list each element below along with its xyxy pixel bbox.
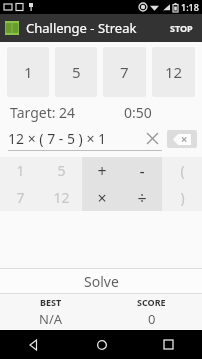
button[interactable]: ÷ (122, 184, 162, 211)
button[interactable]: 5 (41, 157, 82, 184)
button[interactable]: ) (162, 184, 202, 211)
button[interactable]: STOP (166, 18, 197, 38)
staticText: 0:50 (124, 103, 152, 122)
button[interactable]: Backspace (167, 130, 197, 148)
button[interactable]: ( (162, 157, 202, 184)
button[interactable]: Back (0, 330, 68, 359)
staticText: ÷ (137, 187, 147, 209)
button[interactable]: × (82, 184, 122, 211)
staticText: Solve (84, 272, 119, 291)
staticText: ( (180, 161, 185, 180)
staticText: 1:18 (181, 1, 199, 13)
staticText: N/A (39, 310, 63, 328)
button[interactable]: Recent apps (135, 330, 202, 359)
staticText: 7 (16, 188, 25, 207)
staticText: SCORE (137, 296, 166, 308)
staticText: 12 (165, 62, 183, 82)
button[interactable]: 7 (103, 47, 146, 97)
staticText: 12 × ( 7 - 5 ) × 1 (8, 129, 107, 148)
button[interactable]: Solve (0, 269, 202, 293)
button[interactable]: 1 (0, 157, 41, 184)
staticText: ) (180, 188, 185, 207)
staticText: 5 (57, 161, 66, 180)
staticText: 5 (72, 62, 81, 82)
staticText: 1 (24, 62, 33, 82)
button[interactable]: 7 (0, 184, 41, 211)
button[interactable]: 5 (55, 47, 97, 97)
button[interactable]: 12 (152, 47, 195, 97)
staticText: + (97, 160, 107, 182)
staticText: 1 (16, 161, 25, 180)
button[interactable]: 1 (7, 47, 49, 97)
staticText: 12 (53, 188, 70, 207)
staticText: × (97, 187, 107, 209)
button[interactable]: + (82, 157, 122, 184)
staticText: 7 (120, 62, 129, 82)
button[interactable]: 12 (41, 184, 82, 211)
button[interactable]: - (122, 157, 162, 184)
staticText: Target: 24 (10, 103, 76, 122)
button[interactable]: Clear expression (142, 128, 162, 148)
staticText: BEST (40, 296, 62, 308)
staticText: Challenge - Streak (26, 19, 137, 37)
staticText: 0 (148, 310, 156, 328)
button[interactable]: Home (68, 330, 135, 359)
staticText: STOP (170, 22, 193, 34)
staticText: - (139, 160, 145, 182)
button[interactable]: BEST (0, 294, 101, 330)
button[interactable]: SCORE (101, 294, 202, 330)
